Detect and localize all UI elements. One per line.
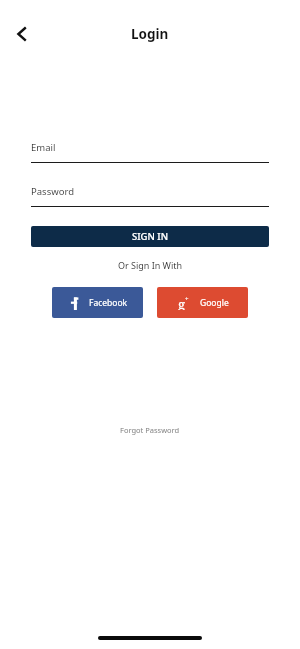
- staticText: Login: [131, 25, 169, 43]
- button[interactable]: Forgot Password: [112, 421, 188, 439]
- button[interactable]: Back: [4, 16, 40, 52]
- button[interactable]: SIGN IN: [31, 226, 269, 247]
- staticText: Google: [200, 297, 229, 309]
- staticText: g: [178, 295, 185, 310]
- staticText: SIGN IN: [132, 230, 169, 243]
- staticText: Forgot Password: [120, 425, 180, 435]
- button[interactable]: Facebook: [52, 287, 143, 318]
- staticText: Or Sign In With: [31, 259, 269, 271]
- staticText: Email: [31, 141, 56, 154]
- button[interactable]: Password: [31, 185, 269, 207]
- button[interactable]: Email: [31, 141, 269, 163]
- button[interactable]: g: [157, 287, 248, 318]
- staticText: +: [185, 295, 189, 303]
- staticText: Facebook: [89, 297, 128, 309]
- staticText: Password: [31, 185, 74, 198]
